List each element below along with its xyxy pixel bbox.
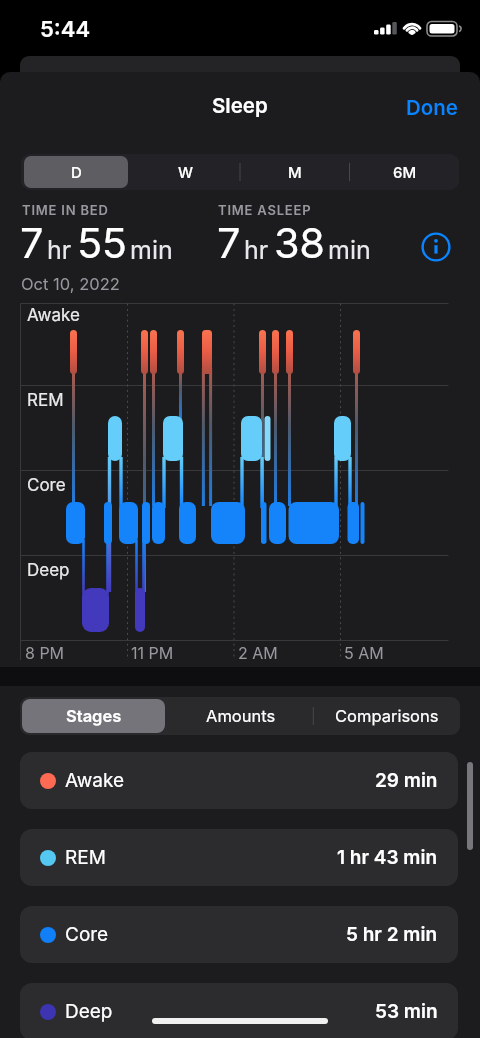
staticText: REM <box>27 390 64 411</box>
button[interactable]: Deep <box>20 983 458 1038</box>
staticText: 1 hr 43 min <box>337 846 438 869</box>
staticText: Sleep <box>212 93 268 118</box>
staticText: Oct 10, 2022 <box>21 274 120 294</box>
staticText: 6M <box>393 163 417 181</box>
staticText: Deep <box>65 1000 113 1023</box>
button[interactable]: W <box>131 154 241 190</box>
button[interactable] <box>24 156 128 188</box>
staticText: W <box>178 163 194 181</box>
button[interactable]: Amounts <box>167 697 314 735</box>
staticText: 29 min <box>375 769 438 792</box>
staticText: Core <box>65 923 109 946</box>
staticText: min <box>130 235 173 265</box>
staticText: D <box>71 163 82 181</box>
staticText: hr <box>244 235 269 265</box>
button[interactable]: Awake <box>20 752 458 809</box>
staticText: Awake <box>27 305 80 326</box>
staticText: 5 hr 2 min <box>346 923 438 946</box>
button[interactable]: Done <box>396 93 458 121</box>
staticText: 7 <box>20 218 43 268</box>
button[interactable]: 6M <box>350 154 460 190</box>
button[interactable]: D <box>21 154 131 190</box>
staticText: 7 <box>217 218 240 268</box>
staticText: 11 PM <box>131 643 174 662</box>
staticText: Stages <box>66 706 122 726</box>
button[interactable]: REM <box>20 829 458 886</box>
button[interactable]: M <box>240 154 350 190</box>
staticText: REM <box>65 846 106 869</box>
staticText: M <box>288 163 302 181</box>
staticText: min <box>328 235 371 265</box>
staticText: 5:44 <box>40 16 91 43</box>
staticText: 8 PM <box>25 643 65 662</box>
staticText: 55 <box>77 218 127 268</box>
staticText: Amounts <box>206 706 276 726</box>
staticText: hr <box>47 235 72 265</box>
staticText: Done <box>406 95 458 120</box>
staticText: Core <box>27 475 66 496</box>
button[interactable]: Stages <box>20 697 167 735</box>
staticText: TIME IN BED <box>22 202 109 218</box>
staticText: 38 <box>274 218 325 268</box>
button[interactable] <box>22 699 165 733</box>
staticText: Deep <box>27 560 70 581</box>
staticText: 5 AM <box>344 643 384 662</box>
staticText: 53 min <box>375 1000 438 1023</box>
staticText: Comparisons <box>335 706 439 726</box>
button[interactable] <box>420 231 452 263</box>
staticText: 2 AM <box>238 643 278 662</box>
staticText: Awake <box>65 769 125 792</box>
staticText: TIME ASLEEP <box>218 202 312 218</box>
button[interactable]: Comparisons <box>313 697 460 735</box>
button[interactable]: Core <box>20 906 458 963</box>
